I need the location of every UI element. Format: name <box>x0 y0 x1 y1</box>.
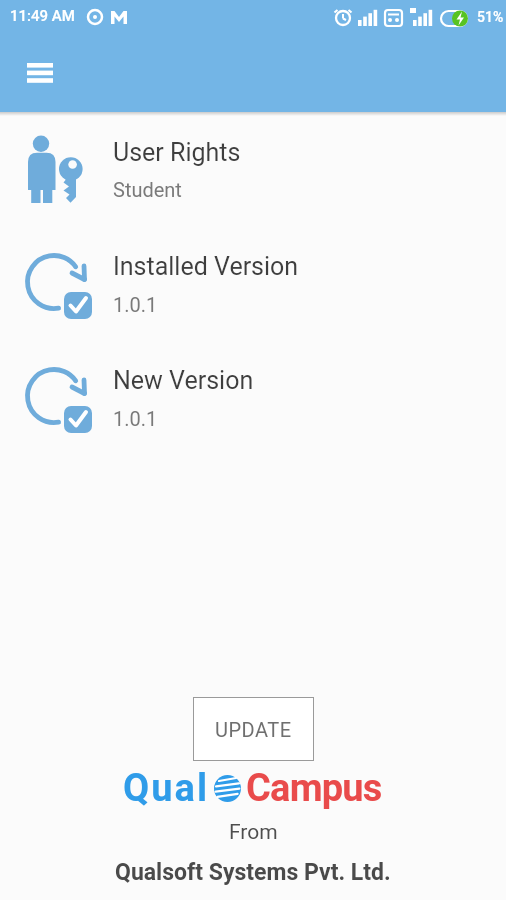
button[interactable] <box>15 51 65 95</box>
staticText: 1.0.1 <box>113 293 158 316</box>
staticText: User Rights <box>113 138 241 167</box>
staticText: 1.0.1 <box>113 407 158 430</box>
staticText: 51% <box>477 9 504 25</box>
button[interactable]: User Rights <box>0 125 506 217</box>
staticText: UPDATE <box>215 718 292 741</box>
staticText: 11:49 AM <box>10 7 75 25</box>
staticText: Campus <box>246 766 382 811</box>
staticText: From <box>229 820 278 845</box>
button[interactable]: UPDATE <box>193 697 314 761</box>
staticText: Qualsoft Systems Pvt. Ltd. <box>115 859 391 886</box>
staticText: Qual <box>123 766 209 811</box>
staticText: Installed Version <box>113 252 299 281</box>
button[interactable]: Installed Version <box>0 243 506 335</box>
staticText: Student <box>113 178 182 201</box>
staticText: New Version <box>113 366 254 395</box>
button[interactable]: New Version <box>0 357 506 449</box>
